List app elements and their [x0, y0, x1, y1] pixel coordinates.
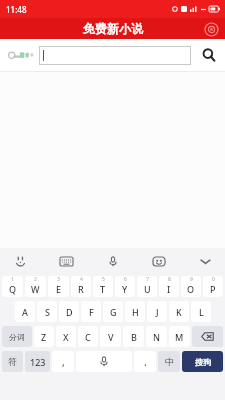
staticText: Q [9, 283, 17, 295]
button[interactable]: X [56, 326, 76, 347]
button[interactable]: 中 [158, 351, 180, 372]
button[interactable]: 分词 [2, 326, 32, 347]
staticText: P [210, 283, 216, 295]
button[interactable]: Settings [203, 21, 219, 37]
staticText: 中 [165, 356, 174, 367]
button[interactable]: V [100, 326, 121, 347]
staticText: Z [41, 331, 47, 343]
button[interactable]: Space [76, 351, 132, 372]
staticText: 4 [80, 276, 83, 283]
staticText: , [62, 355, 65, 369]
button[interactable]: . [134, 351, 156, 372]
staticText: I [167, 283, 171, 295]
button[interactable]: Sticker [149, 251, 169, 271]
button[interactable]: 9 [181, 276, 201, 297]
button[interactable]: L [191, 301, 211, 322]
button[interactable]: Browser logo [5, 45, 37, 65]
button[interactable]: M [169, 326, 190, 347]
button[interactable]: , [52, 351, 74, 372]
staticText: J [156, 306, 159, 318]
button[interactable] [39, 46, 191, 65]
staticText: C [85, 331, 91, 343]
button[interactable]: 0 [203, 276, 223, 297]
staticText: W [31, 283, 40, 295]
button[interactable]: K [169, 301, 189, 322]
button[interactable]: D [59, 301, 79, 322]
button[interactable]: N [146, 326, 167, 347]
staticText: L [199, 306, 204, 318]
staticText: 3 [57, 276, 60, 283]
staticText: R [78, 283, 84, 295]
staticText: O [187, 283, 195, 295]
staticText: Y [122, 283, 128, 295]
button[interactable]: G [103, 301, 123, 322]
button[interactable]: 7 [137, 276, 157, 297]
button[interactable]: J [147, 301, 167, 322]
button[interactable]: H [125, 301, 145, 322]
button[interactable]: A [15, 301, 35, 322]
staticText: F [89, 306, 94, 318]
staticText: 7 [146, 276, 149, 283]
button[interactable]: Keyboard layout [56, 251, 76, 271]
button[interactable]: B [123, 326, 144, 347]
button[interactable]: 4 [71, 276, 91, 297]
staticText: 11:48 [6, 4, 27, 15]
staticText: H [132, 306, 139, 318]
staticText: U [144, 283, 151, 295]
button[interactable]: 8 [159, 276, 179, 297]
button[interactable]: Collapse keyboard [195, 251, 215, 271]
staticText: . [144, 355, 147, 369]
staticText: 5 [102, 276, 105, 283]
button[interactable]: 搜狗 [182, 351, 223, 372]
staticText: 6 [124, 276, 127, 283]
staticText: D [66, 306, 73, 318]
button[interactable]: Backspace [192, 326, 223, 347]
staticText: V [108, 331, 114, 343]
staticText: X [63, 331, 69, 343]
staticText: 2 [34, 276, 37, 283]
staticText: B [131, 331, 137, 343]
staticText: 符 [8, 356, 17, 367]
staticText: A [22, 306, 28, 318]
button[interactable]: C [78, 326, 98, 347]
staticText: 分词 [9, 332, 25, 342]
button[interactable]: 符 [2, 351, 23, 372]
staticText: 1 [11, 276, 14, 283]
button[interactable]: 5 [93, 276, 113, 297]
staticText: 8 [168, 276, 171, 283]
staticText: S [45, 306, 50, 318]
staticText: 搜狗 [195, 357, 211, 367]
button[interactable]: 1 [2, 276, 23, 297]
staticText: M [175, 331, 184, 343]
button[interactable]: F [81, 301, 101, 322]
button[interactable]: Emoji swap [10, 251, 30, 271]
button[interactable]: Z [34, 326, 54, 347]
staticText: E [56, 283, 62, 295]
button[interactable]: 6 [115, 276, 135, 297]
staticText: 0 [212, 276, 215, 283]
staticText: K [176, 306, 182, 318]
button[interactable]: S [37, 301, 57, 322]
staticText: 免费新小说 [83, 21, 143, 36]
button[interactable]: Search [198, 44, 220, 66]
staticText: 123 [30, 356, 46, 368]
staticText: 9 [190, 276, 193, 283]
staticText: T [100, 283, 106, 295]
button[interactable]: 2 [25, 276, 46, 297]
button[interactable]: Voice input [103, 251, 123, 271]
staticText: G [110, 306, 117, 318]
staticText: N [153, 331, 160, 343]
button[interactable]: 3 [48, 276, 69, 297]
button[interactable]: 123 [25, 351, 50, 372]
